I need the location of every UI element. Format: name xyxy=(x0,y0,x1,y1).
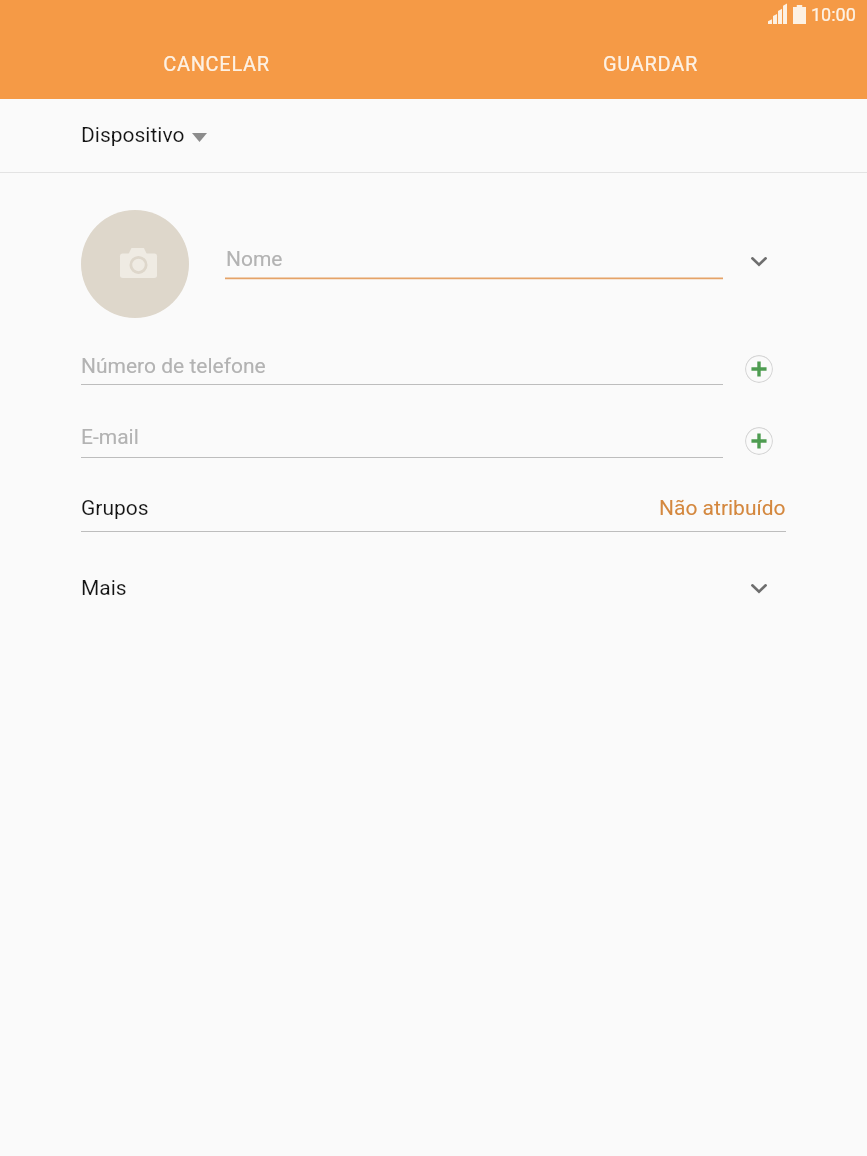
button[interactable]: GUARDAR xyxy=(433,28,867,99)
staticText: Dispositivo xyxy=(81,123,185,148)
staticText: CANCELAR xyxy=(163,52,270,75)
button[interactable]: Número de telefone xyxy=(81,346,723,385)
button[interactable]: E-mail xyxy=(81,417,723,458)
staticText: E-mail xyxy=(81,425,139,450)
staticText: Grupos xyxy=(81,496,149,521)
staticText: GUARDAR xyxy=(603,52,698,75)
button[interactable]: Expandir nome xyxy=(738,241,779,282)
staticText: Mais xyxy=(81,576,127,601)
button[interactable]: Adicionar foto xyxy=(81,210,189,318)
button[interactable]: Nome xyxy=(225,239,723,280)
button[interactable]: Mais xyxy=(0,562,867,614)
button[interactable]: Adicionar xyxy=(745,355,773,383)
staticText: Nome xyxy=(226,247,283,272)
staticText: Não atribuído xyxy=(659,496,786,521)
staticText: Número de telefone xyxy=(81,354,266,379)
button[interactable]: Grupos xyxy=(0,484,867,532)
button[interactable]: Adicionar xyxy=(745,427,773,455)
staticText: 10:00 xyxy=(811,4,856,25)
button[interactable]: CANCELAR xyxy=(0,28,433,99)
button[interactable]: Dispositivo xyxy=(0,99,867,172)
